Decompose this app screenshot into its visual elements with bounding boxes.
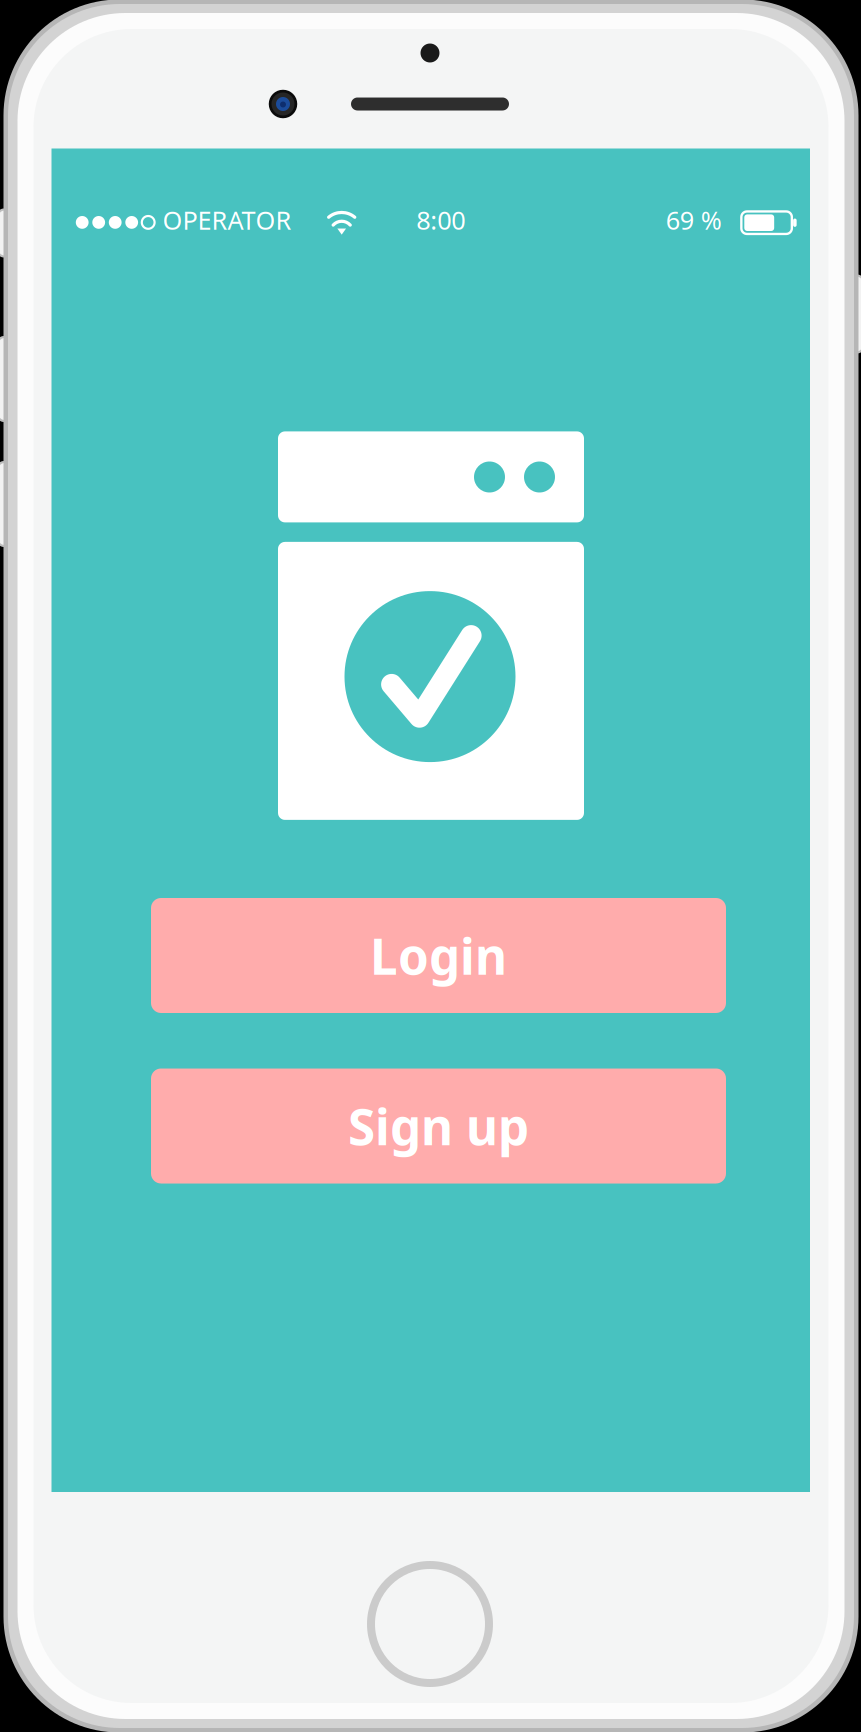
staticText: Sign up [348, 1093, 529, 1159]
staticText: Login [370, 923, 507, 988]
button[interactable]: Login [151, 898, 726, 1013]
staticText: 8:00 [416, 203, 465, 237]
button[interactable]: Sign up [151, 1068, 726, 1183]
staticText: OPERATOR [162, 203, 291, 237]
staticText: 69 % [666, 203, 722, 237]
